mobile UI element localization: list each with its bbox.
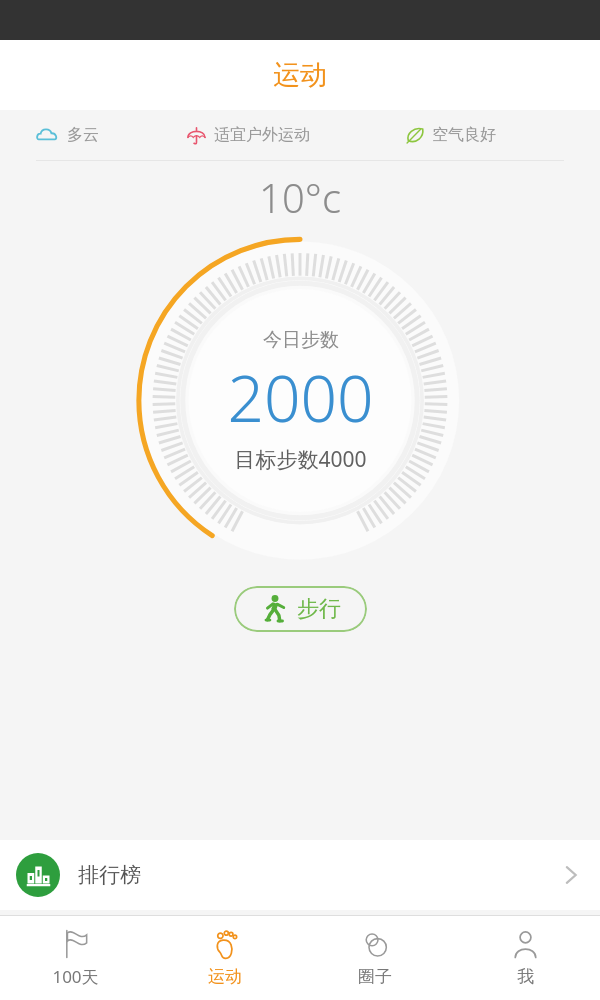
- staticText: 圈子: [358, 966, 392, 987]
- staticText: 运动: [208, 966, 242, 987]
- staticText: 排行榜: [78, 862, 141, 888]
- staticText: 目标步数4000: [234, 445, 367, 474]
- button[interactable]: 多云: [36, 124, 187, 146]
- staticText: 100天: [52, 965, 99, 988]
- button[interactable]: 圈子: [300, 916, 450, 1000]
- other: Open ranking: [558, 862, 584, 888]
- staticText: 空气良好: [432, 125, 496, 145]
- staticText: 10°c: [259, 170, 341, 224]
- button[interactable]: 空气良好: [406, 125, 564, 145]
- staticText: 适宜户外运动: [214, 125, 310, 145]
- staticText: 步行: [297, 595, 341, 623]
- button[interactable]: 运动: [150, 916, 300, 1000]
- button[interactable]: 我: [450, 916, 600, 1000]
- button[interactable]: 适宜户外运动: [187, 125, 406, 145]
- staticText: 今日步数: [263, 328, 339, 352]
- staticText: 运动: [273, 58, 327, 92]
- staticText: 多云: [67, 125, 99, 145]
- button[interactable]: 排行榜: [0, 840, 600, 910]
- button[interactable]: 步行: [234, 586, 367, 632]
- staticText: 我: [517, 966, 534, 987]
- staticText: 2000: [227, 354, 374, 441]
- button[interactable]: 100天: [0, 916, 150, 1000]
